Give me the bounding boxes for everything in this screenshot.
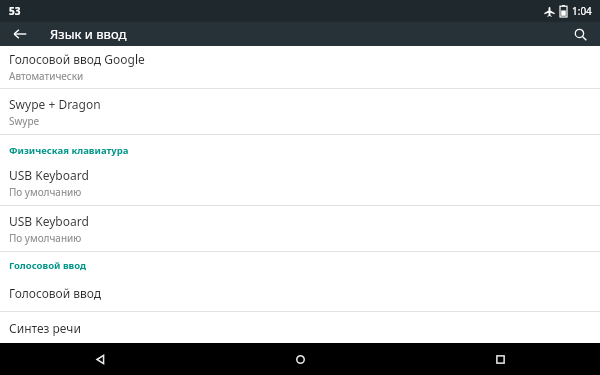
button[interactable]: Back — [8, 22, 32, 46]
staticText: По умолчанию — [9, 185, 82, 199]
staticText: Голосовой ввод — [9, 259, 87, 272]
staticText: Синтез речи — [9, 320, 81, 336]
button[interactable]: Search — [568, 22, 592, 46]
staticText: По умолчанию — [9, 231, 82, 245]
staticText: Язык и ввод — [50, 25, 127, 43]
button[interactable]: USB Keyboard — [0, 160, 600, 205]
staticText: USB Keyboard — [9, 213, 89, 229]
staticText: Физическая клавиатура — [9, 144, 129, 157]
staticText: Swype — [9, 114, 40, 128]
staticText: Голосовой ввод Google — [9, 51, 145, 67]
button[interactable]: USB Keyboard — [0, 206, 600, 251]
staticText: Автоматически — [9, 69, 84, 83]
button[interactable]: Голосовой ввод Google — [0, 46, 600, 88]
staticText: Голосовой ввод — [9, 285, 102, 301]
button[interactable]: Home — [200, 343, 400, 375]
button[interactable]: Swype + Dragon — [0, 89, 600, 134]
button[interactable]: Recent apps — [400, 343, 600, 375]
button[interactable]: Голосовой ввод — [0, 275, 600, 311]
staticText: 1:04 — [572, 4, 592, 18]
staticText: 53 — [9, 4, 21, 18]
button[interactable]: Back — [0, 343, 200, 375]
staticText: Swype + Dragon — [9, 96, 101, 112]
button[interactable]: Синтез речи — [0, 312, 600, 343]
staticText: USB Keyboard — [9, 167, 89, 183]
